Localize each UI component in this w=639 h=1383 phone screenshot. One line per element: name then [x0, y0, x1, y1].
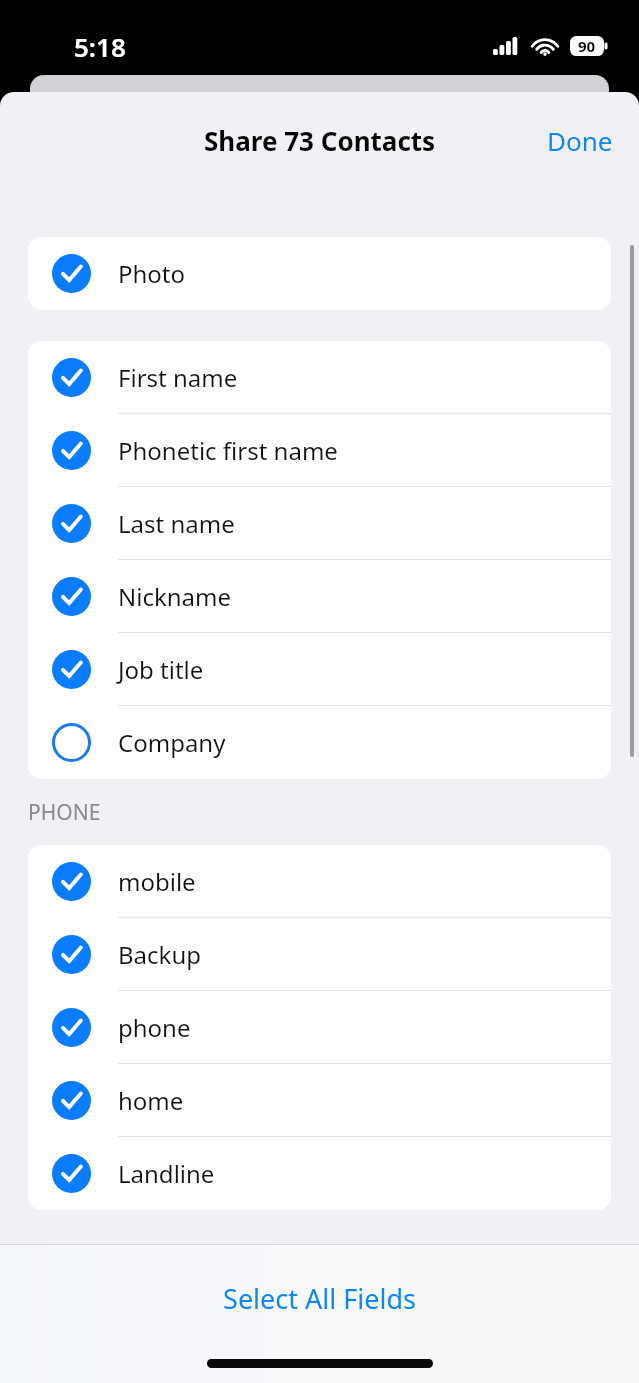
button[interactable]: Select All Fields — [183, 1270, 456, 1327]
button[interactable]: mobile — [28, 845, 611, 918]
staticText: Done — [547, 123, 613, 158]
staticText: EMAIL — [28, 1241, 91, 1270]
staticText: mobile — [118, 865, 196, 898]
staticText: Company — [118, 726, 226, 759]
button[interactable]: Nickname — [28, 560, 611, 633]
button[interactable]: First name — [28, 341, 611, 414]
staticText: Last name — [118, 507, 235, 540]
staticText: Backup — [118, 938, 201, 971]
staticText: 5:18 — [74, 29, 126, 64]
button[interactable]: Done — [521, 111, 639, 170]
staticText: phone — [118, 1011, 191, 1044]
button[interactable]: home — [28, 1064, 611, 1137]
staticText: First name — [118, 361, 238, 394]
staticText: Photo — [118, 257, 186, 290]
staticText: Landline — [118, 1157, 215, 1190]
button[interactable]: phone — [28, 991, 611, 1064]
staticText: 90 — [578, 36, 596, 56]
button[interactable]: Job title — [28, 633, 611, 706]
button[interactable]: Backup — [28, 918, 611, 991]
staticText: Nickname — [118, 580, 232, 613]
staticText: Job title — [118, 653, 204, 686]
button[interactable]: Photo — [28, 237, 611, 310]
button[interactable]: Company — [28, 706, 611, 779]
button[interactable]: Last name — [28, 487, 611, 560]
button[interactable]: Phonetic first name — [28, 414, 611, 487]
staticText: Select All Fields — [223, 1280, 416, 1317]
staticText: Share 73 Contacts — [204, 123, 436, 158]
staticText: Phonetic first name — [118, 434, 338, 467]
staticText: PHONE — [28, 798, 101, 827]
button[interactable]: Landline — [28, 1137, 611, 1210]
staticText: home — [118, 1084, 184, 1117]
